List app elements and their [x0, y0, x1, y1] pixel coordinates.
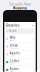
button[interactable]: Apples: [4, 50, 36, 58]
staticText: Butter: [10, 67, 19, 71]
staticText: Simplify Rate: [9, 1, 31, 6]
button[interactable]: Milk: [4, 35, 36, 43]
staticText: 2 litres: [10, 40, 14, 41]
staticText: Shopping: [13, 6, 27, 10]
staticText: Sourdough: [10, 47, 19, 49]
staticText: Coffee: [10, 59, 20, 63]
button[interactable]: Butter: [4, 66, 36, 72]
staticText: Bread: [10, 44, 18, 47]
staticText: Search: [9, 29, 17, 33]
staticText: Apples: [10, 51, 20, 55]
button[interactable]: Bread: [4, 43, 36, 50]
button[interactable]: Add item: [32, 25, 34, 26]
staticText: Milk: [10, 36, 15, 39]
staticText: Groceries: [6, 24, 19, 27]
button[interactable]: Coffee: [4, 58, 36, 66]
staticText: Salted: [10, 71, 14, 72]
staticText: 1 kg: [10, 55, 13, 57]
staticText: Beans: [10, 63, 15, 65]
